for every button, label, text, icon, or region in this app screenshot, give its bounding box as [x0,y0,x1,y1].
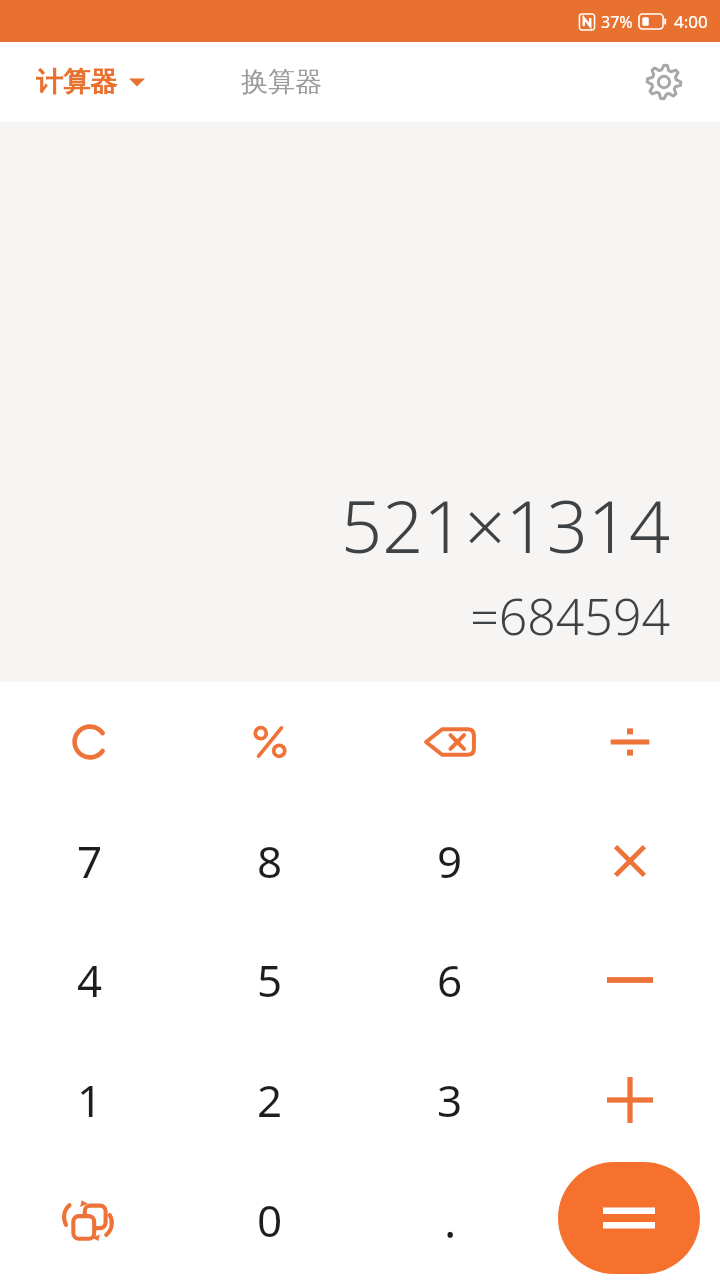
button[interactable]: Convert [0,1160,180,1280]
staticText: 4 [77,950,103,1010]
button[interactable]: Minus [540,920,720,1040]
staticText: 1 [77,1070,103,1130]
button[interactable]: 换算器 [241,65,322,99]
staticText: 5 [257,950,283,1010]
button[interactable]: Percent [180,682,360,801]
button[interactable]: . [360,1160,540,1280]
button[interactable]: Settings [638,56,690,108]
staticText: 521×1314 [341,476,670,574]
staticText: 换算器 [241,65,322,99]
staticText: 9 [437,831,463,891]
staticText: 37% [601,11,633,33]
staticText: =684594 [470,582,670,650]
button[interactable]: 4 [0,920,180,1040]
button[interactable]: 6 [360,920,540,1040]
staticText: 4:00 [674,10,708,33]
button[interactable]: Equals [558,1162,700,1274]
staticText: . [444,1189,457,1252]
button[interactable]: 5 [180,920,360,1040]
button[interactable]: 2 [180,1040,360,1160]
staticText: 6 [437,950,463,1010]
button[interactable]: 9 [360,801,540,920]
button[interactable]: Backspace [360,682,540,801]
staticText: 2 [257,1070,283,1130]
button[interactable]: 1 [0,1040,180,1160]
button[interactable]: 8 [180,801,360,920]
button[interactable]: Plus [540,1040,720,1160]
button[interactable]: Multiply [540,801,720,920]
button[interactable]: 3 [360,1040,540,1160]
button[interactable]: 计算器 [36,65,145,99]
button[interactable]: 0 [180,1160,360,1280]
staticText: 7 [77,831,103,891]
button[interactable]: 7 [0,801,180,920]
staticText: 计算器 [36,65,117,99]
staticText: 3 [437,1070,463,1130]
staticText: 8 [257,831,283,891]
button[interactable]: Divide [540,682,720,801]
staticText: 0 [257,1190,283,1250]
button[interactable]: Clear [0,682,180,801]
